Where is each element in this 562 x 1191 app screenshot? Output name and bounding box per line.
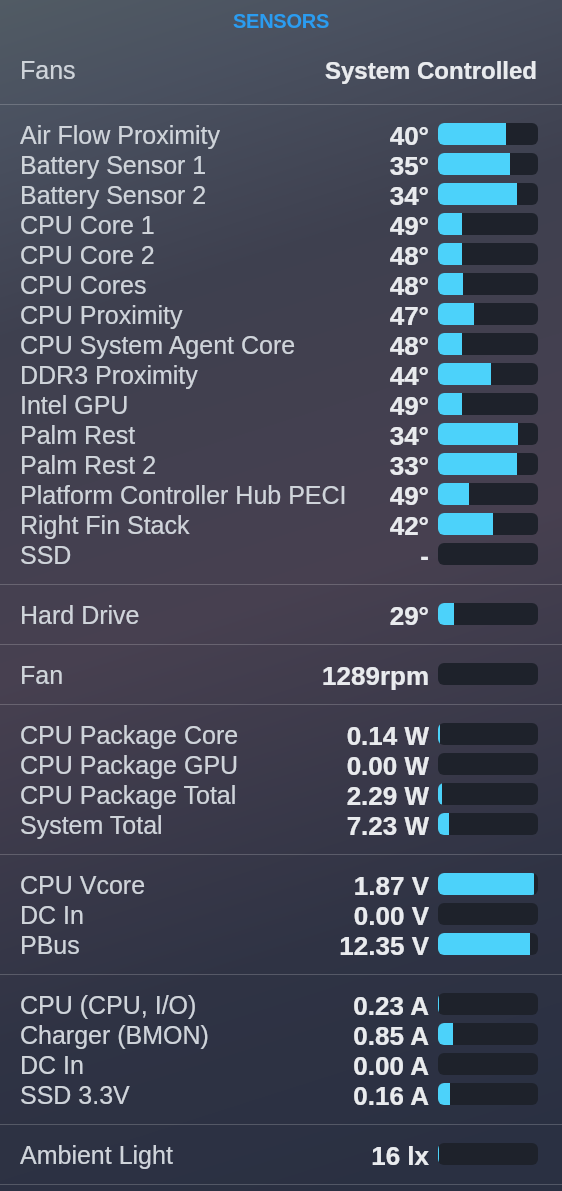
- staticText: Hard Drive: [20, 601, 140, 629]
- button[interactable]: DC In: [0, 900, 562, 930]
- button[interactable]: CPU Cores: [0, 270, 562, 300]
- staticText: 1289rpm: [322, 661, 429, 690]
- staticText: 48°: [389, 331, 429, 360]
- staticText: 47°: [389, 301, 429, 330]
- button[interactable]: System Total: [0, 810, 562, 840]
- staticText: 35°: [389, 151, 429, 180]
- staticText: 42°: [389, 511, 429, 540]
- staticText: 49°: [389, 391, 429, 420]
- staticText: CPU Package GPU: [20, 751, 239, 779]
- button[interactable]: Intel GPU: [0, 390, 562, 420]
- staticText: 16 lx: [371, 1141, 429, 1170]
- staticText: 48°: [389, 271, 429, 300]
- staticText: CPU Vcore: [20, 871, 146, 899]
- staticText: 33°: [389, 451, 429, 480]
- button[interactable]: DDR3 Proximity: [0, 360, 562, 390]
- button[interactable]: Right Fin Stack: [0, 510, 562, 540]
- button[interactable]: CPU (CPU, I/O): [0, 990, 562, 1020]
- staticText: Battery Sensor 1: [20, 151, 207, 179]
- button[interactable]: Charger (BMON): [0, 1020, 562, 1050]
- button[interactable]: Battery Sensor 1: [0, 150, 562, 180]
- staticText: CPU Core 2: [20, 241, 155, 269]
- button[interactable]: Fan: [0, 660, 562, 690]
- staticText: SENSORS: [233, 10, 330, 32]
- button[interactable]: CPU Proximity: [0, 300, 562, 330]
- staticText: DC In: [20, 901, 84, 929]
- staticText: 48°: [389, 241, 429, 270]
- staticText: 40°: [389, 121, 429, 150]
- button[interactable]: Palm Rest: [0, 420, 562, 450]
- staticText: 44°: [389, 361, 429, 390]
- button[interactable]: Fans: [0, 44, 562, 104]
- staticText: Intel GPU: [20, 391, 129, 419]
- button[interactable]: Air Flow Proximity: [0, 120, 562, 150]
- button[interactable]: CPU Vcore: [0, 870, 562, 900]
- staticText: 12.35 V: [339, 931, 429, 960]
- button[interactable]: Hard Drive: [0, 600, 562, 630]
- staticText: Palm Rest 2: [20, 451, 157, 479]
- staticText: CPU (CPU, I/O): [20, 991, 197, 1019]
- button[interactable]: Battery Sensor 2: [0, 180, 562, 210]
- staticText: DDR3 Proximity: [20, 361, 198, 389]
- staticText: -: [420, 541, 429, 570]
- staticText: 0.16 A: [353, 1081, 429, 1110]
- staticText: Palm Rest: [20, 421, 136, 449]
- staticText: 2.29 W: [346, 781, 429, 810]
- staticText: Ambient Light: [20, 1141, 173, 1169]
- staticText: 49°: [389, 211, 429, 240]
- staticText: CPU Core 1: [20, 211, 155, 239]
- button[interactable]: CPU Package GPU: [0, 750, 562, 780]
- staticText: 0.14 W: [346, 721, 429, 750]
- staticText: System Controlled: [324, 57, 537, 84]
- staticText: 7.23 W: [346, 811, 429, 840]
- staticText: Air Flow Proximity: [20, 121, 221, 149]
- button[interactable]: SSD 3.3V: [0, 1080, 562, 1110]
- button[interactable]: DC In: [0, 1050, 562, 1080]
- staticText: Charger (BMON): [20, 1021, 209, 1049]
- staticText: CPU Cores: [20, 271, 147, 299]
- staticText: 29°: [389, 601, 429, 630]
- button[interactable]: Palm Rest 2: [0, 450, 562, 480]
- button[interactable]: CPU System Agent Core: [0, 330, 562, 360]
- staticText: SSD: [20, 541, 72, 569]
- staticText: 1.87 V: [353, 871, 429, 900]
- staticText: 0.00 A: [353, 1051, 429, 1080]
- staticText: 49°: [389, 481, 429, 510]
- staticText: DC In: [20, 1051, 84, 1079]
- button[interactable]: SSD: [0, 540, 562, 570]
- staticText: CPU Package Core: [20, 721, 239, 749]
- staticText: Right Fin Stack: [20, 511, 190, 539]
- button[interactable]: CPU Core 1: [0, 210, 562, 240]
- button[interactable]: Platform Controller Hub PECI: [0, 480, 562, 510]
- button[interactable]: CPU Package Core: [0, 720, 562, 750]
- staticText: Fans: [20, 56, 76, 84]
- staticText: PBus: [20, 931, 80, 959]
- staticText: Fan: [20, 661, 64, 689]
- button[interactable]: Ambient Light: [0, 1140, 562, 1170]
- button[interactable]: CPU Package Total: [0, 780, 562, 810]
- staticText: 0.23 A: [353, 991, 429, 1020]
- button[interactable]: PBus: [0, 930, 562, 960]
- staticText: 0.00 W: [346, 751, 429, 780]
- staticText: 34°: [389, 421, 429, 450]
- staticText: 0.00 V: [353, 901, 429, 930]
- staticText: CPU Proximity: [20, 301, 183, 329]
- button[interactable]: CPU Core 2: [0, 240, 562, 270]
- staticText: 0.85 A: [353, 1021, 429, 1050]
- staticText: System Total: [20, 811, 163, 839]
- staticText: CPU System Agent Core: [20, 331, 296, 359]
- staticText: 34°: [389, 181, 429, 210]
- staticText: Battery Sensor 2: [20, 181, 207, 209]
- staticText: SSD 3.3V: [20, 1081, 130, 1109]
- staticText: Platform Controller Hub PECI: [20, 481, 347, 509]
- staticText: CPU Package Total: [20, 781, 237, 809]
